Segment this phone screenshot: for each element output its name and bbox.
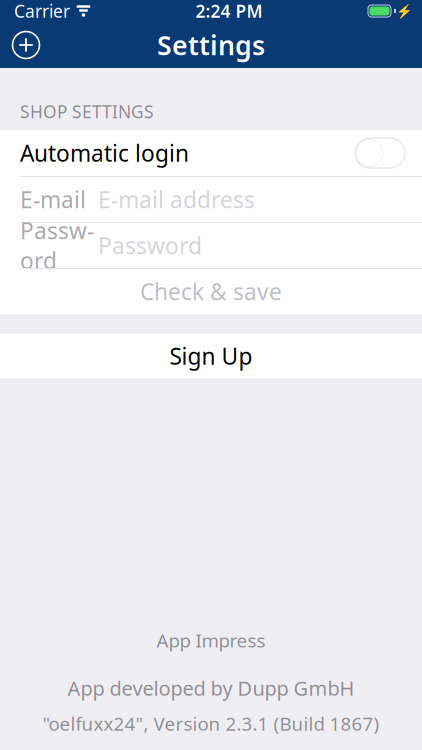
button[interactable]: Password xyxy=(0,223,422,268)
staticText: Settings xyxy=(157,27,265,63)
staticText: E-mail xyxy=(20,184,86,215)
staticText: "oelfuxx24", Version 2.3.1 (Build 1867) xyxy=(42,711,379,736)
staticText: Password xyxy=(98,230,202,261)
button[interactable]: App Impress xyxy=(132,622,289,659)
staticText: 2:24 PM xyxy=(195,0,262,22)
staticText: App Impress xyxy=(156,628,265,653)
staticText: Carrier xyxy=(14,0,70,22)
button[interactable]: E-mail xyxy=(0,177,422,222)
staticText: SHOP SETTINGS xyxy=(20,100,154,123)
staticText: E-mail address xyxy=(98,184,255,215)
staticText: Check & save xyxy=(140,276,282,307)
staticText: Sign Up xyxy=(169,341,252,371)
staticText: Automatic login xyxy=(20,138,189,168)
staticText: ⚡ xyxy=(395,3,412,19)
button[interactable]: Check & save xyxy=(0,269,422,314)
button[interactable]: Sign Up xyxy=(0,334,422,378)
button[interactable]: Add xyxy=(0,22,52,68)
staticText: Password xyxy=(20,215,94,276)
button[interactable]: Automatic login xyxy=(354,137,406,169)
staticText: App developed by Dupp GmbH xyxy=(67,675,354,701)
